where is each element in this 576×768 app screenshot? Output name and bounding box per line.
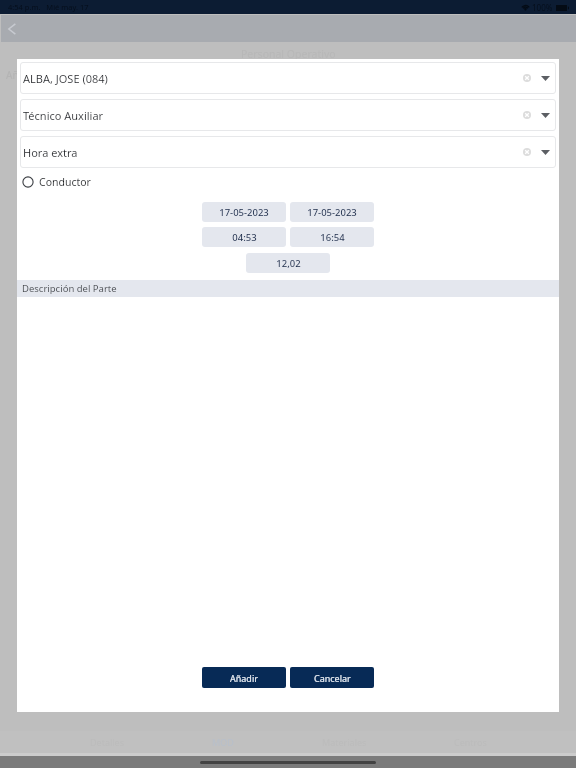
- button[interactable]: Añadir: [202, 667, 286, 688]
- button[interactable]: Open ALBA, JOSE (084) list: [535, 63, 555, 93]
- button[interactable]: Back: [3, 20, 21, 38]
- staticText: Añadir: [230, 672, 258, 684]
- button[interactable]: Técnico Auxiliar: [20, 99, 556, 131]
- staticText: 04:53: [232, 231, 257, 244]
- button[interactable]: 17-05-2023: [202, 202, 286, 222]
- staticText: 4:54 p.m. Mié may. 17: [8, 2, 89, 12]
- button[interactable]: ALBA, JOSE (084): [20, 62, 556, 94]
- button[interactable]: Cancelar: [290, 667, 374, 688]
- staticText: Personal Operativo: [241, 47, 336, 61]
- button[interactable]: 16:54: [290, 227, 374, 247]
- button[interactable]: Conductor: [17, 171, 559, 192]
- button[interactable]: Clear Hora extra: [519, 137, 535, 167]
- button[interactable]: Hora extra: [20, 136, 556, 168]
- staticText: 12,02: [276, 257, 301, 270]
- staticText: 17-05-2023: [219, 206, 269, 219]
- button[interactable]: 12,02: [246, 253, 330, 273]
- staticText: Añ: [6, 68, 19, 82]
- button[interactable]: Open Hora extra list: [535, 137, 555, 167]
- button[interactable]: Clear Técnico Auxiliar: [519, 100, 535, 130]
- staticText: Hora extra: [23, 145, 78, 160]
- button[interactable]: 17-05-2023: [290, 202, 374, 222]
- staticText: 100%: [532, 2, 553, 13]
- staticText: Técnico Auxiliar: [23, 108, 104, 123]
- staticText: 16:54: [320, 231, 345, 244]
- button[interactable]: Open Técnico Auxiliar list: [535, 100, 555, 130]
- button[interactable]: Clear ALBA, JOSE (084): [519, 63, 535, 93]
- staticText: 17-05-2023: [307, 206, 357, 219]
- staticText: Cancelar: [314, 672, 351, 684]
- staticText: Conductor: [39, 175, 91, 189]
- staticText: ALBA, JOSE (084): [23, 71, 108, 86]
- staticText: Descripción del Parte: [22, 282, 117, 295]
- button[interactable]: 04:53: [202, 227, 286, 247]
